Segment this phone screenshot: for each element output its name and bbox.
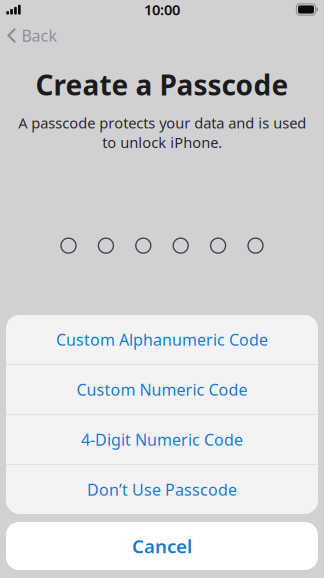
button[interactable]: Cancel (6, 522, 318, 570)
button[interactable]: 4-Digit Numeric Code (6, 415, 318, 464)
staticText: Custom Numeric Code (76, 379, 247, 400)
staticText: Don’t Use Passcode (87, 479, 237, 500)
staticText: 10:00 (144, 0, 180, 19)
staticText: Create a Passcode (35, 66, 288, 103)
staticText: Cancel (132, 534, 192, 558)
button[interactable]: Custom Numeric Code (6, 365, 318, 414)
button[interactable]: Back (0, 18, 68, 49)
staticText: A passcode protects your data and is use… (18, 113, 306, 152)
button[interactable]: Custom Alphanumeric Code (6, 315, 318, 364)
staticText: Custom Alphanumeric Code (56, 329, 268, 350)
button[interactable]: Don’t Use Passcode (6, 465, 318, 514)
staticText: Back (22, 25, 58, 46)
staticText: 4-Digit Numeric Code (81, 429, 243, 450)
